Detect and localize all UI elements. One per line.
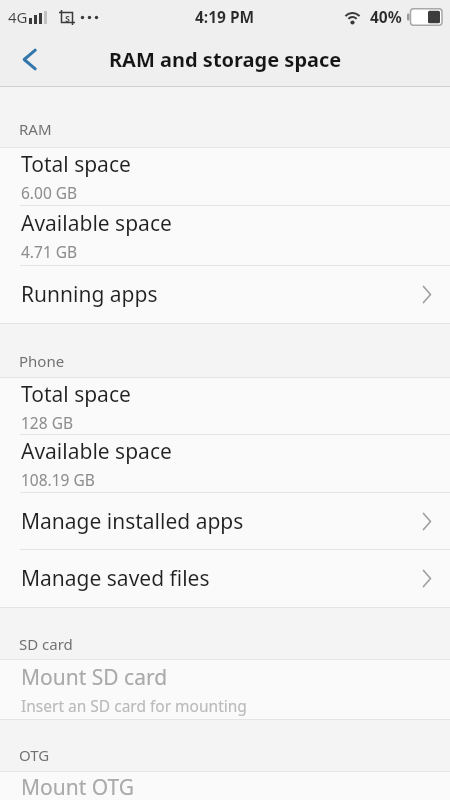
staticText: Phone bbox=[19, 351, 65, 371]
staticText: Running apps bbox=[21, 280, 158, 309]
staticText: Available space bbox=[21, 437, 172, 466]
button[interactable]: Mount SD card bbox=[0, 660, 450, 719]
button[interactable]: Running apps bbox=[0, 266, 450, 323]
staticText: 4G bbox=[8, 7, 28, 27]
button[interactable]: Manage saved files bbox=[0, 550, 450, 607]
button[interactable]: Total space bbox=[0, 148, 450, 205]
staticText: 108.19 GB bbox=[21, 469, 95, 490]
staticText: 4:19 PM bbox=[195, 6, 255, 27]
staticText: Available space bbox=[21, 209, 172, 238]
staticText: Mount SD card bbox=[21, 663, 168, 692]
button[interactable]: Mount OTG bbox=[0, 772, 450, 800]
staticText: S bbox=[65, 12, 70, 24]
button[interactable]: Manage installed apps bbox=[0, 493, 450, 549]
staticText: 6.00 GB bbox=[21, 182, 78, 203]
staticText: 4.71 GB bbox=[21, 241, 78, 262]
staticText: Manage saved files bbox=[21, 564, 210, 593]
staticText: RAM and storage space bbox=[109, 46, 342, 73]
staticText: Manage installed apps bbox=[21, 507, 244, 536]
staticText: Insert an SD card for mounting bbox=[21, 695, 247, 716]
staticText: RAM bbox=[19, 119, 52, 139]
staticText: SD card bbox=[19, 634, 73, 654]
staticText: Mount OTG bbox=[21, 773, 135, 800]
staticText: Total space bbox=[21, 150, 131, 179]
staticText: 128 GB bbox=[21, 412, 73, 433]
button[interactable]: Total space bbox=[0, 378, 450, 434]
button[interactable]: Available space bbox=[0, 435, 450, 492]
staticText: Total space bbox=[21, 380, 131, 409]
button[interactable]: Available space bbox=[0, 206, 450, 265]
staticText: OTG bbox=[19, 745, 50, 765]
button[interactable] bbox=[0, 33, 58, 86]
staticText: 40% bbox=[370, 6, 402, 27]
